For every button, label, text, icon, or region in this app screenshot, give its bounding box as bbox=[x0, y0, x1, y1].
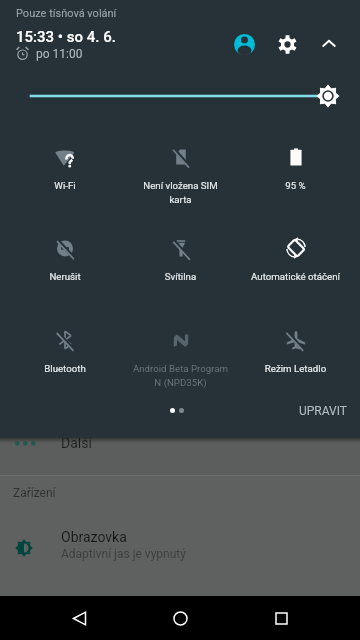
button[interactable]: Collapse quick settings bbox=[317, 32, 341, 56]
button[interactable]: Settings bbox=[275, 32, 299, 56]
button[interactable]: Android Beta Program N (NPD35K) bbox=[123, 325, 238, 403]
button[interactable]: UPRAVIT bbox=[297, 401, 349, 421]
staticText: Bluetooth bbox=[8, 363, 122, 374]
button[interactable]: Další bbox=[0, 430, 360, 473]
button[interactable]: Automatické otáčení bbox=[238, 233, 353, 311]
button[interactable]: User profile bbox=[232, 32, 256, 56]
staticText: Obrazovka bbox=[61, 529, 127, 545]
button[interactable]: Back bbox=[57, 596, 101, 640]
button[interactable]: Není vložena SIM karta bbox=[123, 142, 238, 220]
staticText: po 11:00 bbox=[36, 47, 83, 61]
staticText: Zařízení bbox=[13, 486, 56, 500]
staticText: Automatické otáčení bbox=[239, 271, 352, 282]
staticText: Nerušit bbox=[8, 271, 122, 282]
button[interactable]: Obrazovka bbox=[0, 522, 360, 574]
button[interactable]: Recent apps bbox=[259, 596, 303, 640]
staticText: Adaptivní jas je vypnutý bbox=[61, 547, 186, 561]
button[interactable]: Home bbox=[158, 596, 202, 640]
staticText: Další bbox=[61, 435, 92, 451]
staticText: UPRAVIT bbox=[299, 404, 347, 418]
staticText: Režim Letadlo bbox=[239, 363, 352, 374]
staticText: Svítilna bbox=[124, 271, 237, 282]
button[interactable]: Bluetooth bbox=[7, 325, 123, 403]
button[interactable]: Nerušit bbox=[7, 233, 123, 311]
button[interactable]: Svítilna bbox=[123, 233, 238, 311]
button[interactable]: 95 % bbox=[238, 142, 353, 220]
staticText: 15:33 • so 4. 6. bbox=[16, 28, 116, 46]
staticText: Není vložena SIM karta bbox=[124, 180, 237, 205]
staticText: Android Beta Program N (NPD35K) bbox=[124, 363, 237, 388]
staticText: 95 % bbox=[239, 180, 352, 191]
staticText: Pouze tísňová volání bbox=[16, 7, 117, 20]
button[interactable]: Režim Letadlo bbox=[238, 325, 353, 403]
staticText: Wi-Fi bbox=[8, 180, 122, 191]
button[interactable]: Wi-Fi bbox=[7, 142, 123, 220]
